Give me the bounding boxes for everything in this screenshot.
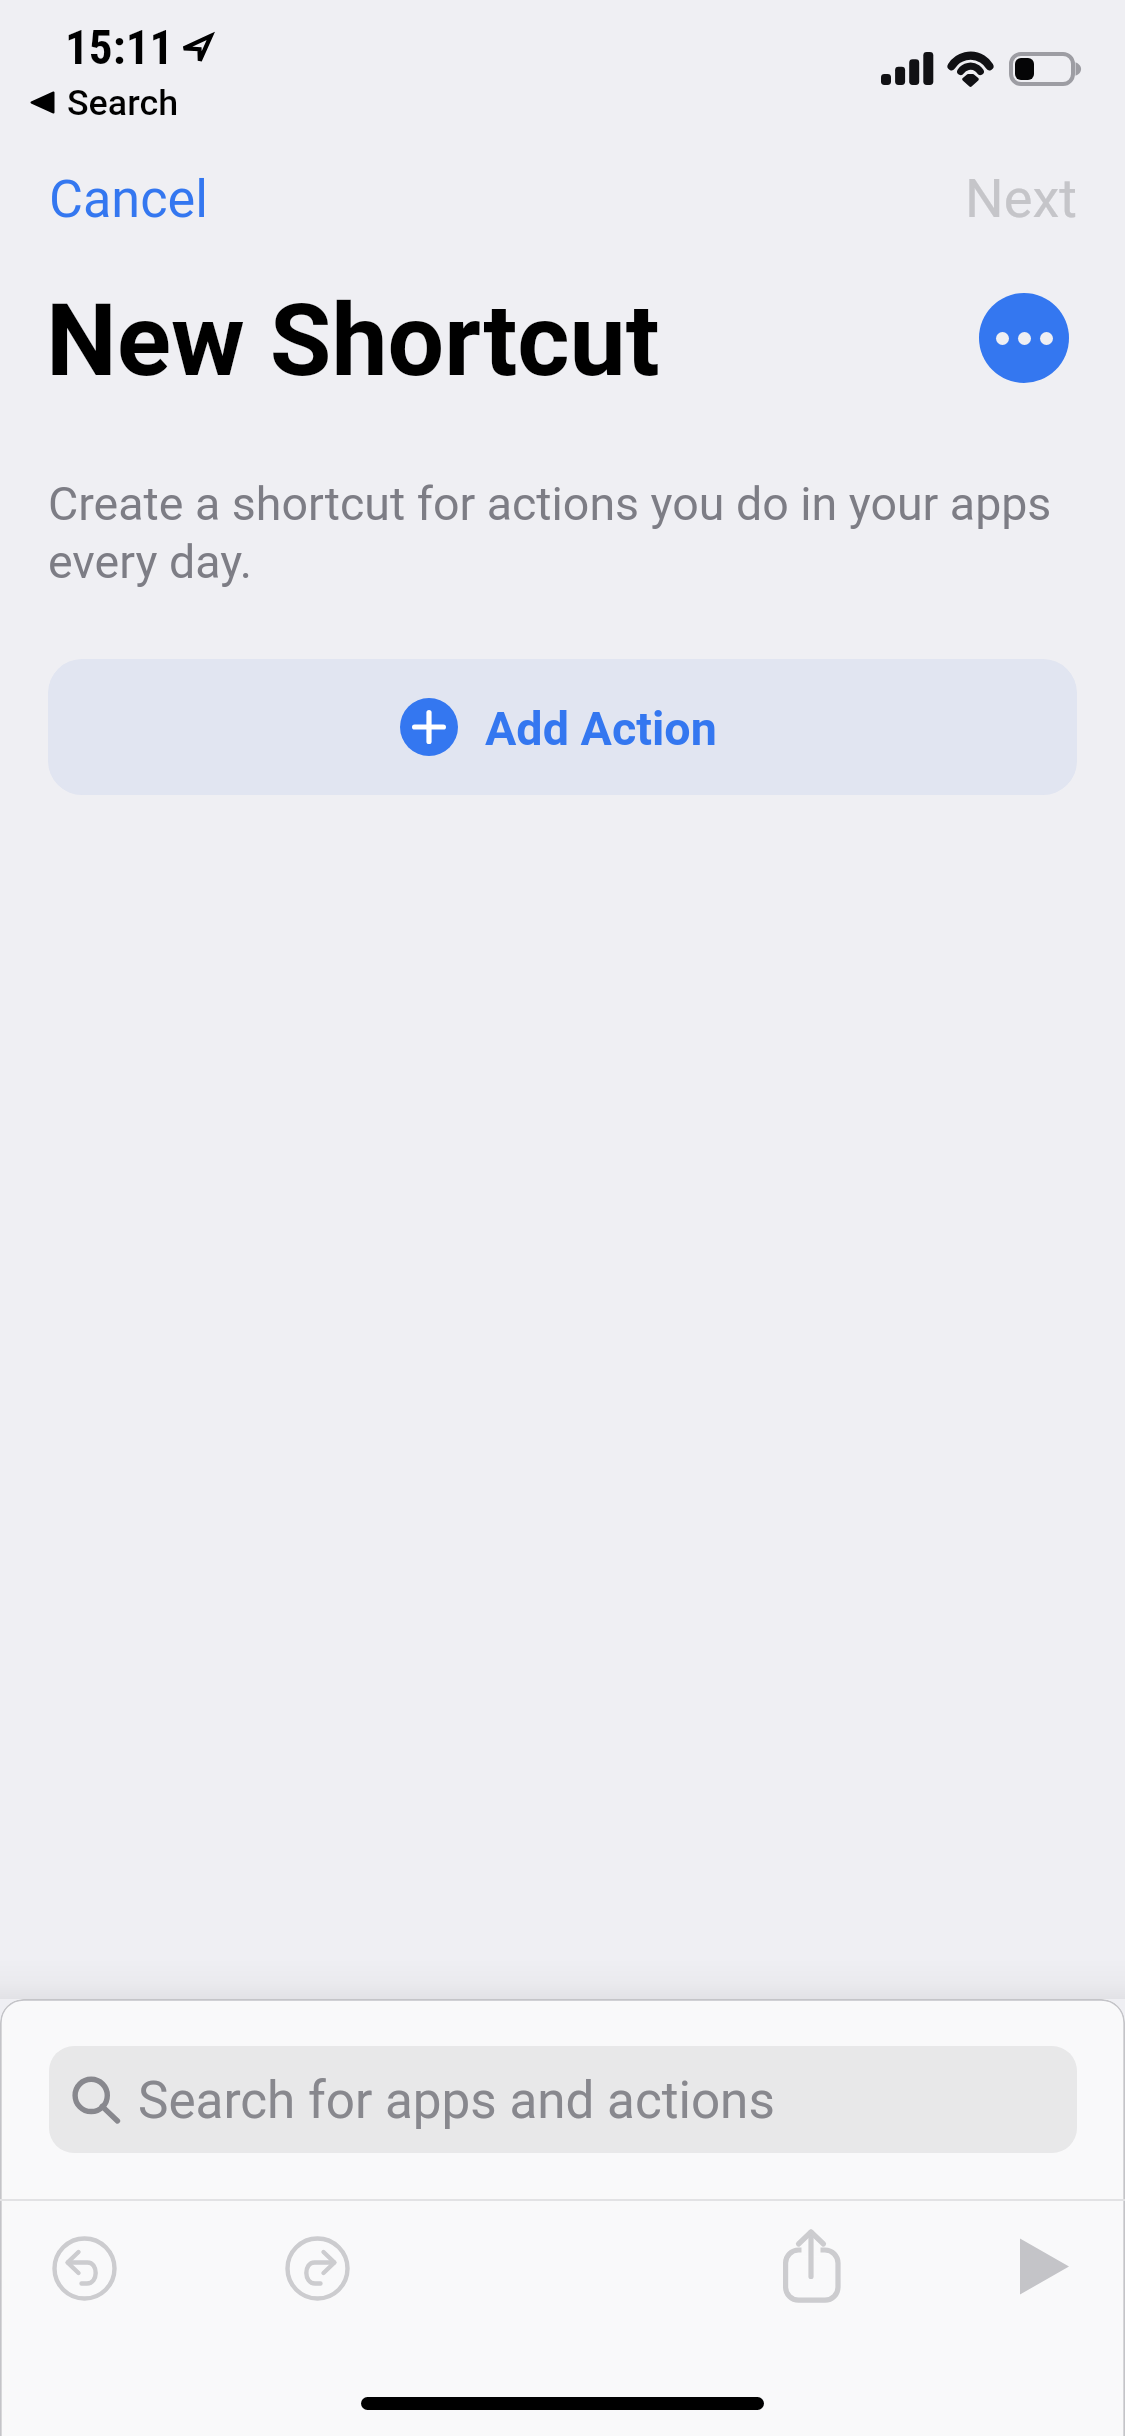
staticText: Cancel <box>49 169 208 230</box>
button[interactable]: Add Action <box>48 659 1077 795</box>
staticText: New Shortcut <box>46 282 660 400</box>
staticText: Search for apps and actions <box>138 2070 775 2130</box>
button[interactable]: Run <box>1019 2238 1070 2295</box>
button[interactable]: Cancel <box>49 169 208 230</box>
button[interactable]: More options <box>979 293 1069 383</box>
button[interactable]: Share <box>783 2229 841 2302</box>
staticText: 15:11 <box>65 20 174 75</box>
button[interactable]: Undo <box>46 2230 123 2307</box>
button[interactable]: Next <box>965 167 1077 231</box>
button[interactable]: Redo <box>279 2230 356 2307</box>
button[interactable]: Search <box>31 82 179 124</box>
staticText: Create a shortcut for actions you do in … <box>48 477 1068 589</box>
button[interactable]: Search for apps and actions <box>49 2046 1077 2153</box>
staticText: Next <box>965 167 1077 231</box>
staticText: Add Action <box>485 702 717 757</box>
staticText: Search <box>67 82 179 124</box>
